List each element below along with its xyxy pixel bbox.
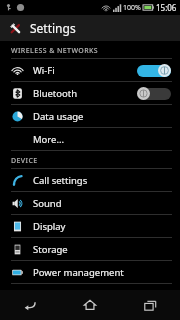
- button[interactable]: Call settings: [0, 169, 180, 191]
- button[interactable]: Wi-Fi: [0, 59, 180, 81]
- staticText: Data usage: [33, 110, 171, 123]
- button[interactable]: Settings: [0, 15, 180, 41]
- button[interactable]: Data usage: [0, 105, 180, 127]
- button[interactable]: Power management: [0, 261, 180, 283]
- staticText: Display: [33, 220, 171, 233]
- staticText: 100%: [123, 3, 141, 13]
- staticText: Sound: [33, 197, 171, 210]
- button[interactable]: Display: [0, 215, 180, 237]
- button[interactable]: Sound: [0, 192, 180, 214]
- button[interactable]: Storage: [0, 238, 180, 260]
- staticText: WIRELESS & NETWORKS: [11, 46, 99, 56]
- staticText: More...: [33, 133, 171, 146]
- staticText: DEVICE: [11, 156, 38, 166]
- staticText: Bluetooth: [33, 87, 137, 100]
- button[interactable]: Bluetooth off: [137, 87, 171, 100]
- button[interactable]: Recent apps: [120, 290, 180, 320]
- staticText: Settings: [30, 20, 76, 36]
- button[interactable]: Wi-Fi on: [137, 64, 171, 77]
- button[interactable]: Home: [60, 290, 120, 320]
- button[interactable]: Back: [0, 290, 60, 320]
- staticText: Power management: [33, 266, 171, 279]
- button[interactable]: Bluetooth: [0, 82, 180, 104]
- staticText: 15:06: [156, 2, 177, 13]
- staticText: Call settings: [33, 174, 171, 187]
- staticText: Wi-Fi: [33, 64, 137, 77]
- button[interactable]: More...: [0, 128, 180, 150]
- staticText: Storage: [33, 243, 171, 256]
